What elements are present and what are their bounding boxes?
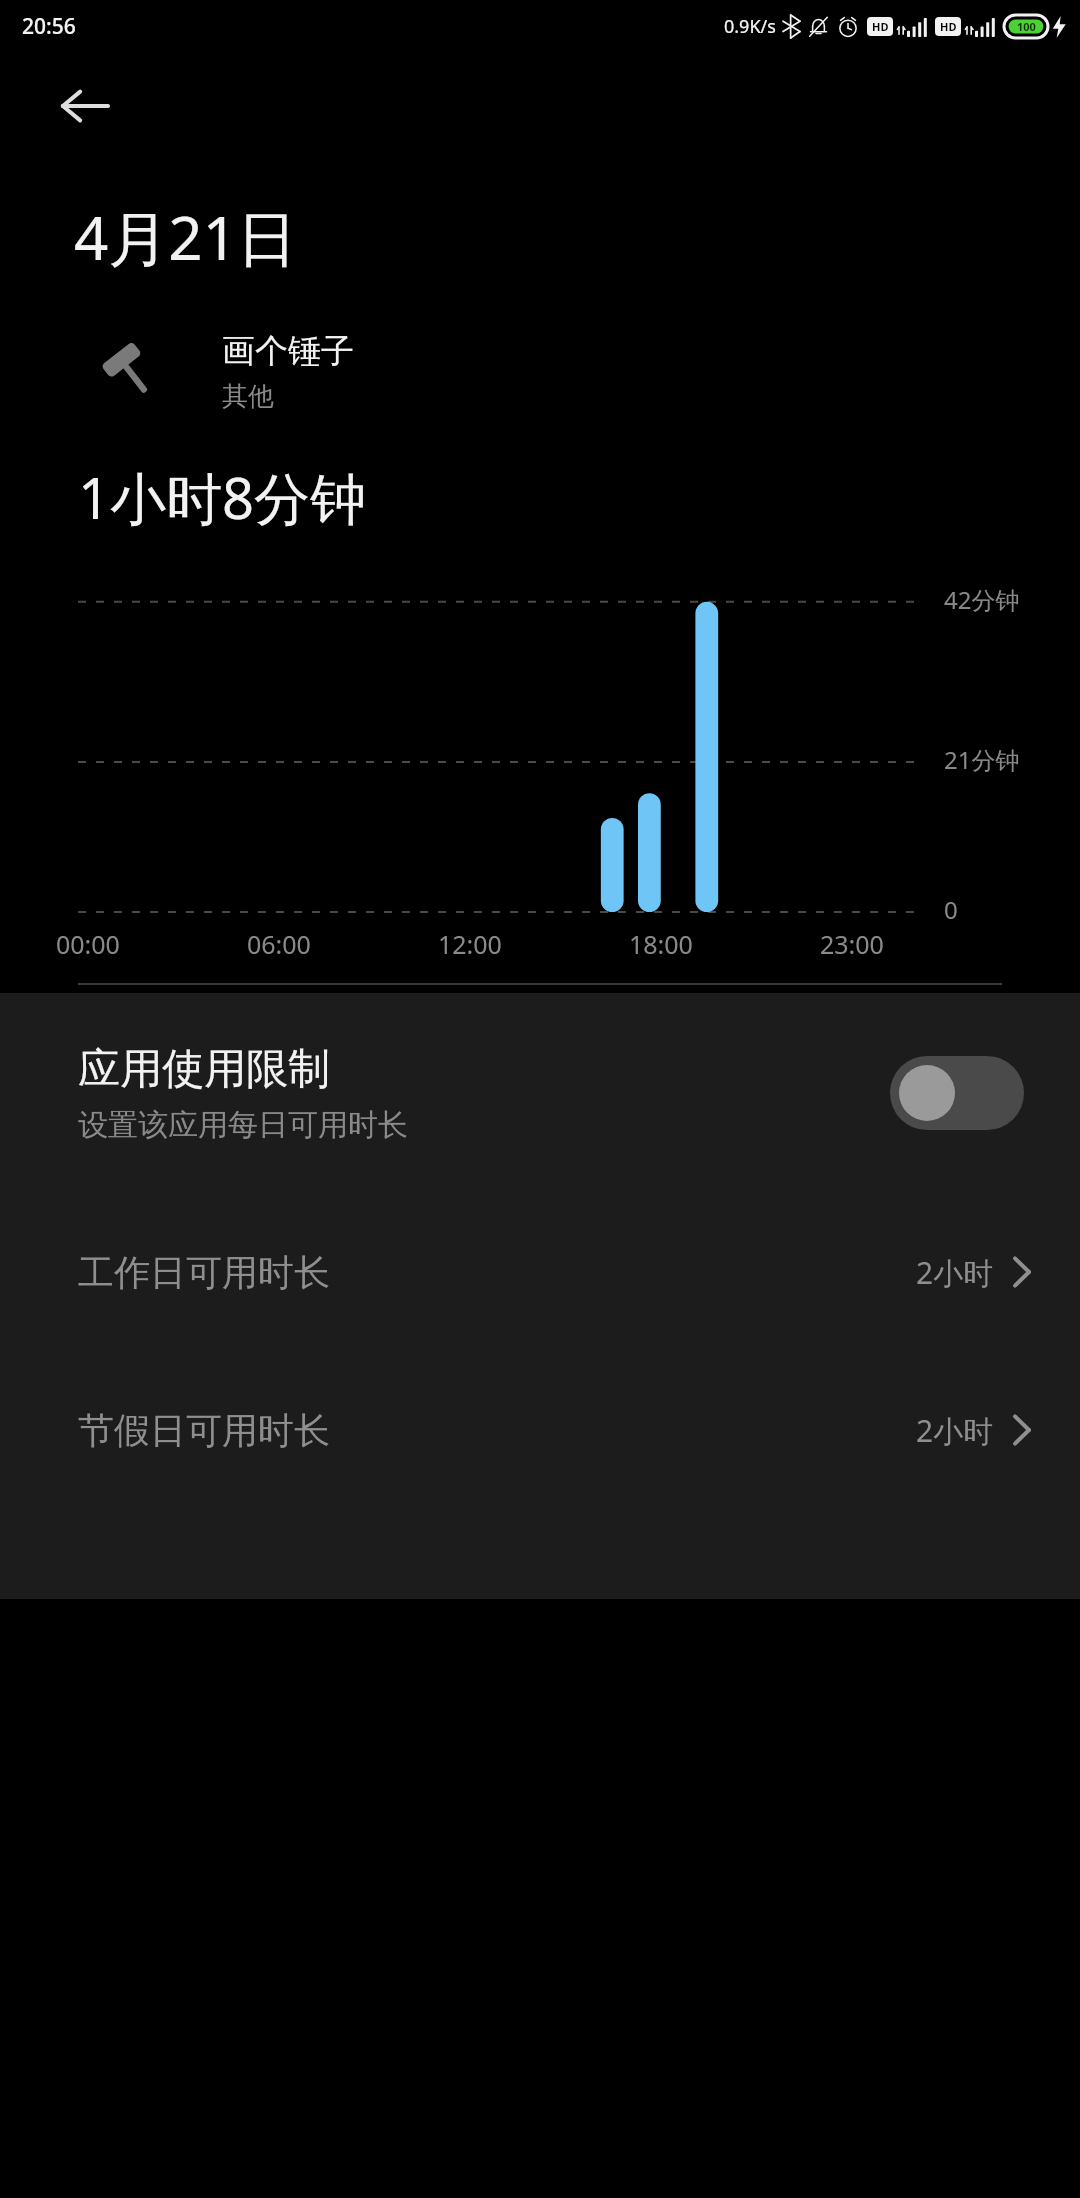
button[interactable]: 应用使用限制开关: [890, 1056, 1024, 1130]
staticText: 节假日可用时长: [78, 1408, 916, 1453]
staticText: 06:00: [247, 927, 311, 961]
staticText: 其他: [222, 380, 274, 413]
button[interactable]: 画个锤子: [100, 330, 1080, 413]
staticText: 18:00: [629, 927, 693, 961]
button[interactable]: 应用使用限制: [0, 993, 1080, 1193]
staticText: 设置该应用每日可用时长: [78, 1106, 408, 1144]
staticText: 00:00: [56, 927, 120, 961]
staticText: 应用使用限制: [78, 1043, 330, 1096]
staticText: 2小时: [916, 1410, 994, 1451]
staticText: 0: [944, 893, 958, 926]
staticText: HD: [872, 19, 889, 34]
staticText: 42分钟: [944, 583, 1020, 616]
staticText: 2小时: [916, 1252, 994, 1293]
staticText: 画个锤子: [222, 330, 354, 372]
staticText: HD: [940, 19, 957, 34]
staticText: 20:56: [22, 12, 76, 41]
button[interactable]: 节假日可用时长: [0, 1351, 1080, 1509]
staticText: 21分钟: [944, 743, 1020, 776]
staticText: 100: [1017, 19, 1036, 34]
staticText: 4月21日: [74, 196, 297, 278]
button[interactable]: 工作日可用时长: [0, 1193, 1080, 1351]
staticText: 12:00: [438, 927, 502, 961]
button[interactable]: Back: [52, 74, 116, 138]
staticText: 1小时8分钟: [78, 459, 367, 535]
staticText: 23:00: [820, 927, 884, 961]
staticText: 0.9K/s: [724, 14, 776, 39]
staticText: 工作日可用时长: [78, 1250, 916, 1295]
